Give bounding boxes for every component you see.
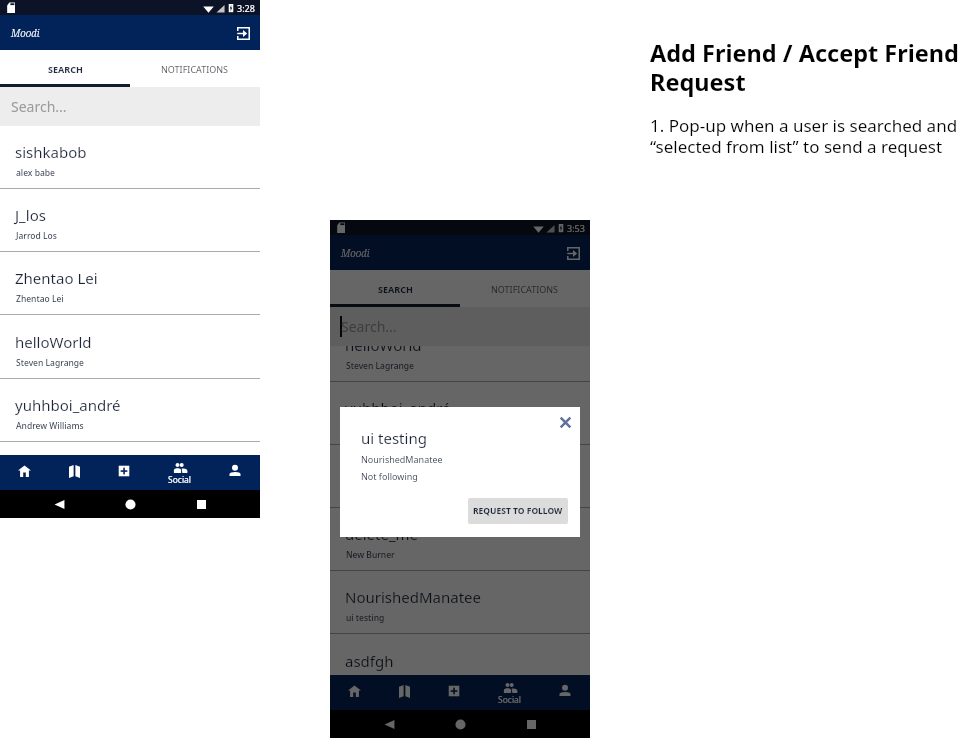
button[interactable]: Log out: [564, 244, 582, 262]
button[interactable]: yuhhboi_andré: [0, 379, 260, 442]
button[interactable]: Map: [379, 675, 429, 710]
button[interactable]: REQUEST TO FOLLOW: [468, 498, 568, 524]
button[interactable]: Add: [429, 675, 479, 710]
staticText: Zhentao Lei: [15, 268, 98, 288]
staticText: REQUEST TO FOLLOW: [473, 505, 563, 517]
staticText: NOTIFICATIONS: [161, 63, 229, 75]
staticText: Not following: [361, 470, 418, 482]
button[interactable]: Profile: [540, 675, 590, 710]
staticText: 1. Pop-up when a user is searched and “s…: [650, 114, 972, 158]
button[interactable]: delete_me: [330, 508, 590, 571]
button[interactable]: Profile: [210, 455, 260, 490]
button[interactable]: Zhentao Lei: [330, 307, 590, 318]
staticText: SEARCH: [378, 283, 413, 295]
staticText: Andrew Williams: [346, 423, 414, 435]
button[interactable]: NOTIFICATIONS: [460, 270, 590, 307]
button[interactable]: helloWorld: [330, 319, 590, 382]
staticText: NourishedManatee: [361, 453, 443, 465]
button[interactable]: Recent apps: [189, 492, 213, 516]
staticText: delete_me: [345, 524, 419, 544]
button[interactable]: Back: [47, 492, 71, 516]
staticText: sishkabob: [15, 142, 87, 162]
button[interactable]: Search...: [330, 307, 590, 346]
staticText: testuser: [345, 461, 403, 481]
staticText: J_los: [15, 205, 46, 225]
staticText: ui testing: [361, 428, 427, 448]
button[interactable]: Back: [377, 712, 401, 736]
button[interactable]: helloWorld: [0, 316, 260, 379]
staticText: 3:28: [237, 2, 255, 14]
button[interactable]: sishkabob: [0, 126, 260, 189]
staticText: yuhhboi_andré: [15, 395, 121, 415]
staticText: Steven Lagrange: [16, 357, 84, 369]
staticText: 3:53: [567, 222, 585, 234]
button[interactable]: Log out: [234, 24, 252, 42]
button[interactable]: NOTIFICATIONS: [130, 50, 260, 87]
button[interactable]: Close: [556, 413, 575, 432]
button[interactable]: NourishedManatee: [330, 571, 590, 634]
staticText: Social: [168, 474, 192, 486]
staticText: Jarrod Los: [16, 230, 57, 242]
button[interactable]: asdfgh: [330, 635, 590, 675]
button[interactable]: Home: [330, 675, 379, 710]
button[interactable]: SEARCH: [330, 270, 460, 307]
button[interactable]: J_los: [0, 189, 260, 252]
staticText: Search...: [11, 97, 67, 116]
staticText: NOTIFICATIONS: [491, 283, 559, 295]
staticText: NourishedManatee: [345, 587, 481, 607]
staticText: yuhhboi_andré: [345, 398, 451, 418]
button[interactable]: Home: [118, 492, 142, 516]
button[interactable]: SEARCH: [0, 50, 130, 87]
button[interactable]: Home: [0, 455, 49, 490]
button[interactable]: Social: [479, 675, 540, 710]
staticText: ui testing: [346, 612, 385, 624]
staticText: helloWorld: [15, 332, 92, 352]
button[interactable]: Recent apps: [519, 712, 543, 736]
staticText: asdfgh: [345, 651, 394, 671]
button[interactable]: Search...: [0, 87, 260, 126]
staticText: Social: [498, 694, 522, 706]
staticText: Add Friend / Accept Friend Request: [650, 37, 972, 98]
button[interactable]: Social: [149, 455, 210, 490]
staticText: alex babe: [16, 167, 55, 179]
staticText: Andrew Williams: [16, 420, 84, 432]
button[interactable]: testuser: [330, 445, 590, 508]
button[interactable]: Zhentao Lei: [0, 252, 260, 315]
button[interactable]: Map: [49, 455, 99, 490]
staticText: SEARCH: [48, 63, 83, 75]
button[interactable]: Add: [99, 455, 149, 490]
staticText: Steven Lagrange: [346, 360, 414, 372]
staticText: New Burner: [346, 549, 395, 561]
button[interactable]: yuhhboi_andré: [330, 382, 590, 445]
staticText: Search...: [341, 317, 397, 336]
staticText: Moodi: [341, 246, 370, 260]
staticText: helloWorld: [345, 335, 422, 355]
staticText: Moodi: [11, 26, 40, 40]
button[interactable]: Home: [448, 712, 472, 736]
staticText: Zhentao Lei: [16, 293, 64, 305]
